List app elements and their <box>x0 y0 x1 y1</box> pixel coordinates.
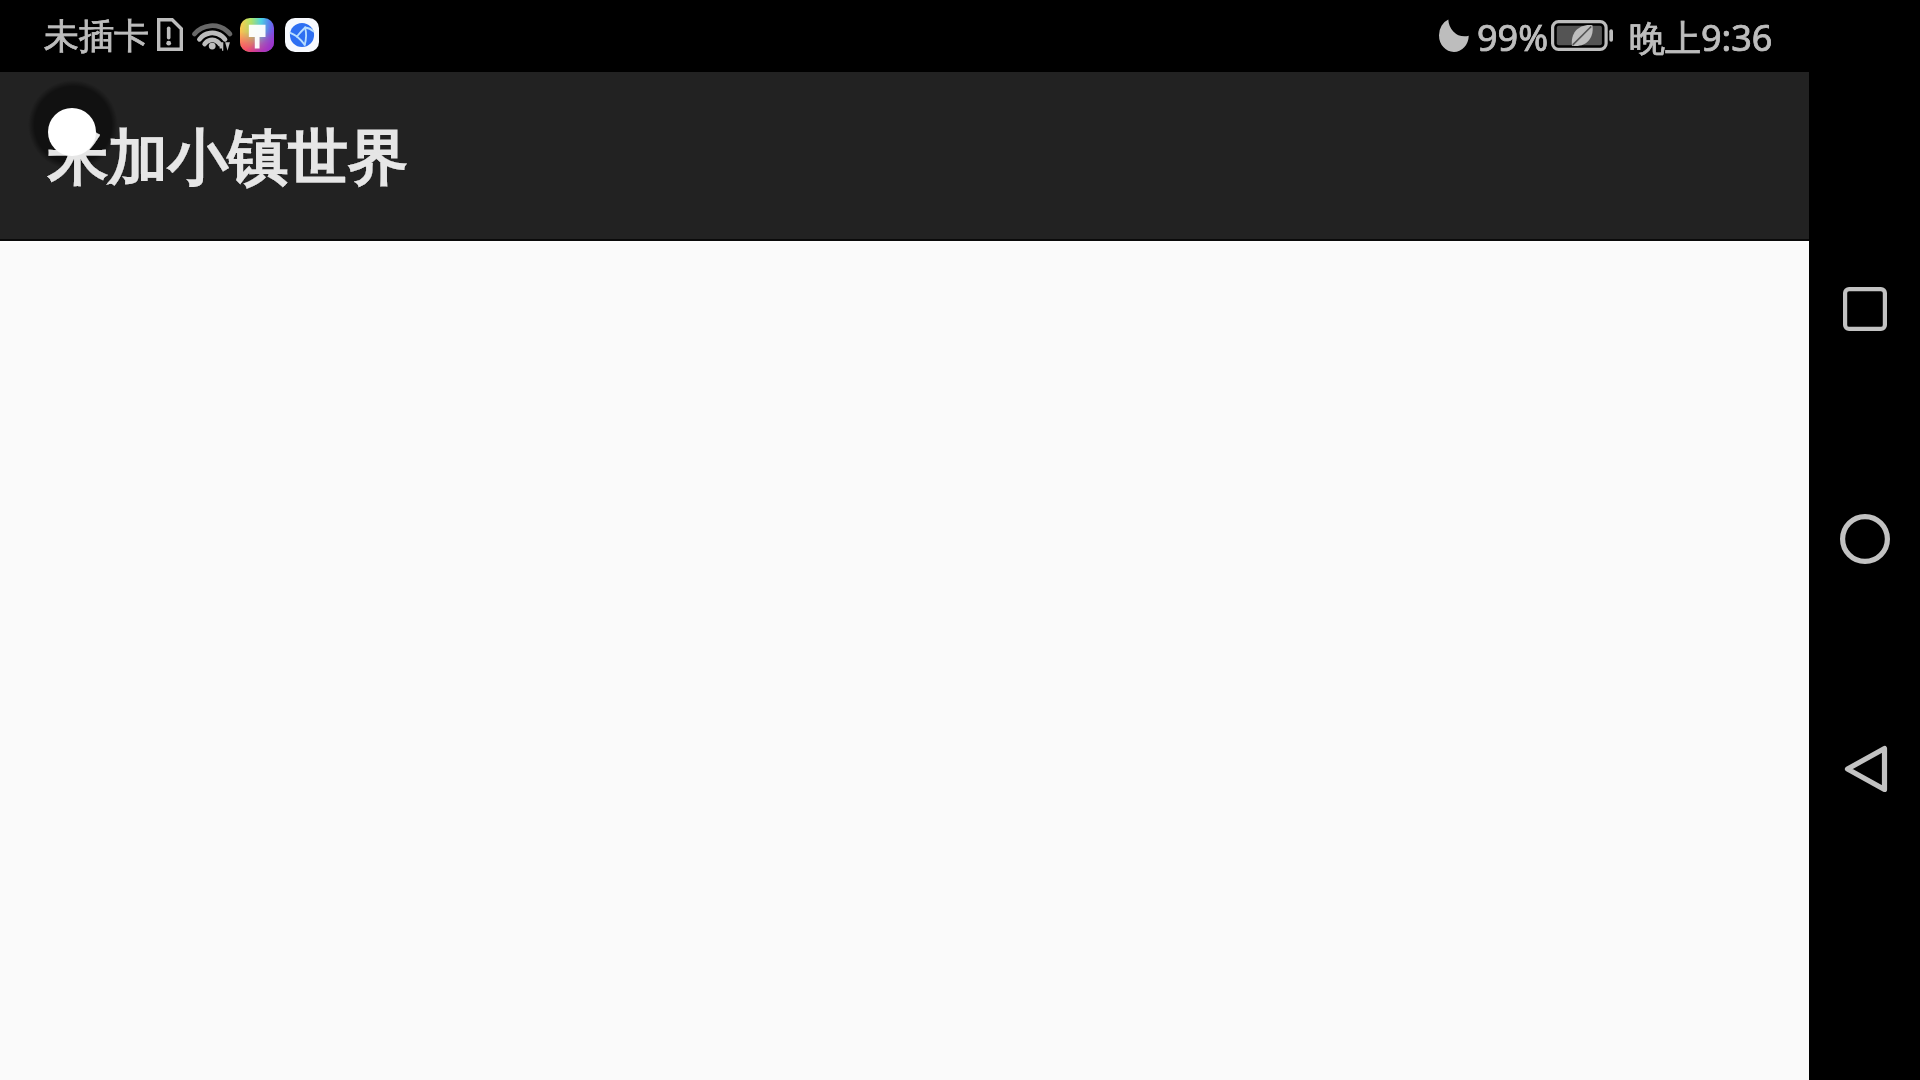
button[interactable]: Recent apps <box>1837 281 1893 337</box>
button[interactable]: Back <box>1838 741 1894 797</box>
staticText: 未插卡 <box>44 14 149 58</box>
staticText: 米加小镇世界 <box>48 120 408 196</box>
other: Wi-Fi connected <box>193 14 233 52</box>
other: Do not disturb <box>1439 18 1470 52</box>
other: Loading <box>48 108 96 156</box>
other: Battery 99 percent, power saving <box>1551 20 1614 51</box>
button[interactable]: 米加小镇世界 <box>0 72 1809 239</box>
other: Running app <box>240 18 274 52</box>
staticText: 晚上9:36 <box>1629 13 1773 62</box>
button[interactable]: Home <box>1837 511 1893 567</box>
staticText: 未插卡 <box>44 14 149 58</box>
staticText: 晚上9:36 <box>1629 13 1773 62</box>
other: Browser <box>285 18 319 52</box>
staticText: 米加小镇世界 <box>48 120 408 196</box>
staticText: 99% <box>1477 13 1549 62</box>
staticText: 99% <box>1477 13 1549 62</box>
other: No SIM card <box>156 18 183 52</box>
